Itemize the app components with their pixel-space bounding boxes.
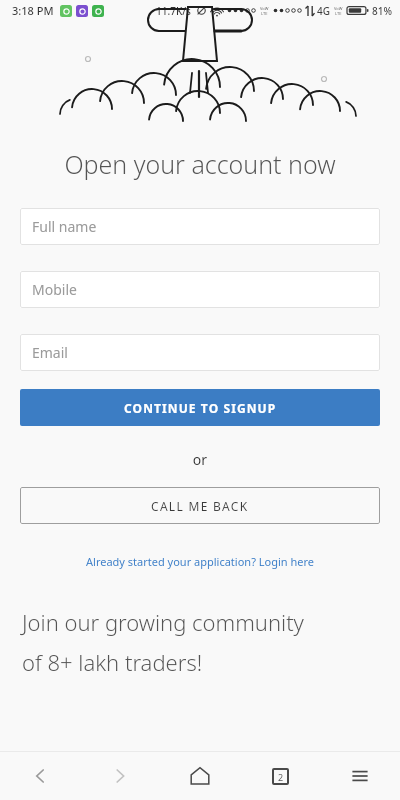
staticText: CALL ME BACK xyxy=(151,498,249,514)
staticText: 3:18 PM xyxy=(12,3,54,18)
staticText: of 8+ lakh traders! xyxy=(22,647,203,677)
staticText: CONTINUE TO SIGNUP xyxy=(124,400,277,416)
staticText: Mobile xyxy=(32,280,77,299)
staticText: Email xyxy=(32,343,68,362)
staticText: Already started your application? Login … xyxy=(86,554,314,569)
staticText: Open your account now xyxy=(0,147,400,181)
staticText: 4G xyxy=(317,4,330,18)
button[interactable]: Back xyxy=(0,752,80,800)
staticText: LTE xyxy=(261,11,268,16)
staticText: VoW xyxy=(334,6,343,11)
button[interactable]: CONTINUE TO SIGNUP xyxy=(20,389,380,426)
staticText: Join our growing community xyxy=(22,607,304,637)
button[interactable]: Home xyxy=(160,752,240,800)
button[interactable]: Menu xyxy=(320,752,400,800)
button[interactable]: Already started your application? Login … xyxy=(0,550,400,573)
staticText: 2 xyxy=(278,771,284,783)
staticText: or xyxy=(0,450,400,469)
button[interactable]: Mobile xyxy=(20,271,380,308)
staticText: 11.7K/s xyxy=(156,4,191,18)
staticText: 81% xyxy=(372,4,392,18)
staticText: VoW xyxy=(260,6,269,11)
staticText: Full name xyxy=(32,217,97,236)
button[interactable]: CALL ME BACK xyxy=(20,487,380,524)
button[interactable]: Tabs xyxy=(240,752,320,800)
button[interactable]: Email xyxy=(20,334,380,371)
staticText: LTE xyxy=(335,11,342,16)
button[interactable]: Full name xyxy=(20,208,380,245)
button[interactable]: Forward xyxy=(80,752,160,800)
